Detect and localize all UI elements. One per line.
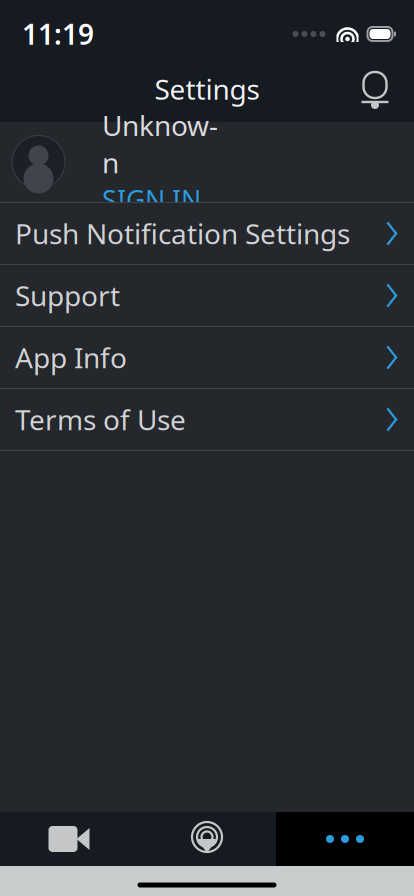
staticText: SIGN IN [102, 182, 201, 217]
button[interactable]: More [276, 812, 414, 866]
button[interactable]: Push Notification Settings [0, 203, 414, 264]
button[interactable]: Unknown [0, 122, 414, 202]
button[interactable]: Live [138, 812, 276, 866]
staticText: Support [15, 277, 120, 314]
button[interactable]: App Info [0, 327, 414, 388]
staticText: Settings [154, 70, 259, 108]
button[interactable]: Support [0, 265, 414, 326]
staticText: Unknown [102, 107, 218, 181]
button[interactable]: Notifications [348, 64, 402, 114]
button[interactable]: Video [0, 812, 138, 866]
staticText: Terms of Use [15, 401, 186, 438]
staticText: 11:19 [22, 15, 94, 53]
staticText: Push Notification Settings [15, 215, 350, 252]
button[interactable]: Terms of Use [0, 389, 414, 450]
staticText: App Info [15, 339, 127, 376]
